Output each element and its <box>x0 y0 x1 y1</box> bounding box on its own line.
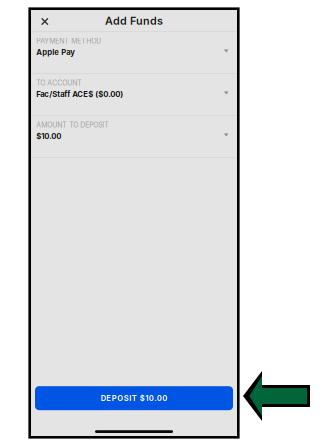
staticText: Apple Pay <box>36 47 75 57</box>
button[interactable]: DEPOSIT $10.00 <box>35 386 233 410</box>
staticText: TO ACCOUNT <box>36 79 82 87</box>
button[interactable]: TO ACCOUNT <box>31 73 237 115</box>
staticText: DEPOSIT $10.00 <box>101 394 167 403</box>
staticText: Fac/Staff ACE$ ($0.00) <box>36 89 123 99</box>
button[interactable]: AMOUNT TO DEPOSIT <box>31 115 237 157</box>
button[interactable]: PAYMENT METHOD <box>31 31 237 73</box>
staticText: AMOUNT TO DEPOSIT <box>36 121 109 129</box>
button[interactable]: Close <box>37 13 53 29</box>
staticText: Add Funds <box>105 14 163 27</box>
staticText: $10.00 <box>36 131 61 141</box>
staticText: PAYMENT METHOD <box>36 37 101 45</box>
